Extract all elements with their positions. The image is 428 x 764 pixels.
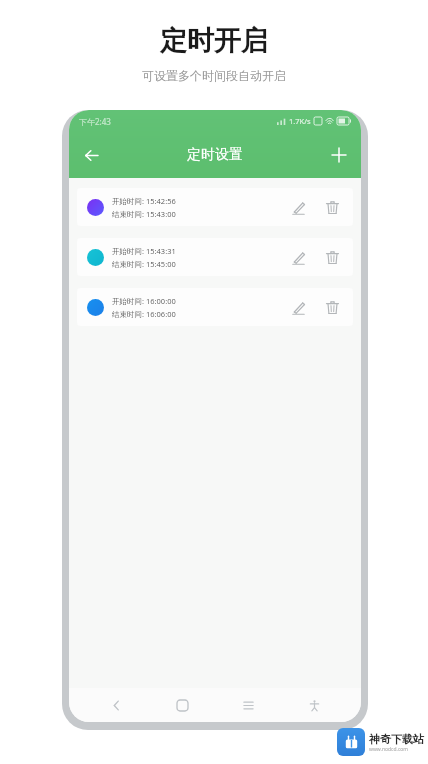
button[interactable]: Menu — [233, 690, 263, 720]
staticText: 下午2:43 — [79, 116, 111, 127]
button[interactable]: Edit — [283, 292, 313, 322]
staticText: 结束时间: 15:43:00 — [112, 209, 176, 219]
button[interactable]: Edit — [283, 192, 313, 222]
staticText: 可设置多个时间段自动开启 — [142, 68, 286, 83]
staticText: 开始时间: 15:42:56 — [112, 196, 176, 206]
button[interactable]: Accessibility — [299, 690, 329, 720]
staticText: 定时开启 — [160, 24, 268, 58]
button[interactable]: Add — [317, 133, 361, 177]
staticText: 结束时间: 16:06:00 — [112, 309, 176, 319]
button[interactable]: 开始时间: 15:42:56 — [77, 188, 353, 226]
staticText: www.nodcd.com — [369, 746, 409, 753]
button[interactable]: 开始时间: 15:43:31 — [77, 238, 353, 276]
button[interactable]: 开始时间: 16:00:00 — [77, 288, 353, 326]
button[interactable]: Delete — [317, 192, 347, 222]
button[interactable]: Delete — [317, 292, 347, 322]
staticText: 1.7K/s — [289, 116, 311, 126]
staticText: 开始时间: 15:43:31 — [112, 246, 176, 256]
button[interactable]: Delete — [317, 242, 347, 272]
button[interactable]: Back — [101, 690, 131, 720]
staticText: 定时设置 — [187, 146, 243, 164]
staticText: 神奇下载站 — [369, 732, 424, 746]
button[interactable]: Edit — [283, 242, 313, 272]
button[interactable]: Back — [69, 133, 113, 177]
staticText: 开始时间: 16:00:00 — [112, 296, 176, 306]
button[interactable]: Home — [167, 690, 197, 720]
button[interactable]: 神奇下载站 — [337, 728, 424, 756]
staticText: 结束时间: 15:45:00 — [112, 259, 176, 269]
